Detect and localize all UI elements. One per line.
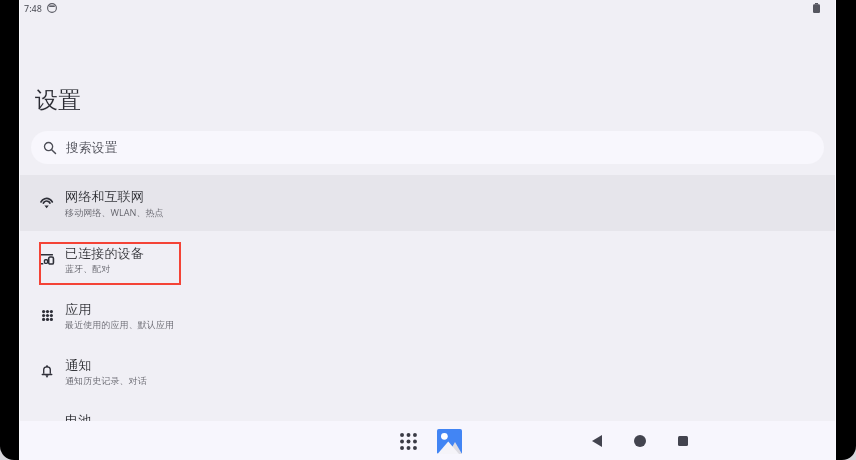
button[interactable]: 已连接的设备 [19,231,836,287]
staticText: 搜索设置 [66,140,118,156]
staticText: 最近使用的应用、默认应用 [65,319,175,330]
button[interactable]: 电池 [19,399,836,455]
staticText: 通知 [65,357,92,374]
button[interactable]: Home [624,425,656,457]
staticText: 设置 [35,86,81,115]
staticText: 蓝牙、配对 [65,263,111,274]
button[interactable]: 网络和互联网 [19,175,836,231]
staticText: 应用 [65,301,92,318]
button[interactable]: 应用 [19,287,836,343]
button[interactable]: Photos [435,427,463,455]
button[interactable]: All apps [394,427,422,455]
staticText: 电池 [65,412,92,429]
button[interactable]: 搜索设置 [31,131,824,164]
staticText: 网络和互联网 [65,188,144,205]
button[interactable]: Back [581,425,613,457]
staticText: 移动网络、WLAN、热点 [65,206,164,218]
staticText: 7:48 [24,2,42,14]
staticText: 通知历史记录、对话 [65,375,147,386]
staticText: 已连接的设备 [65,245,144,262]
button[interactable]: 通知 [19,343,836,399]
button[interactable]: Recents [667,425,699,457]
